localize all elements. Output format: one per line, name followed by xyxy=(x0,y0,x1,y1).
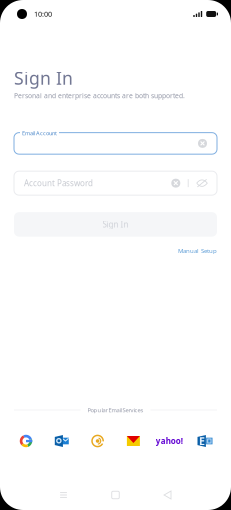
staticText: Sign In xyxy=(14,66,73,90)
staticText: 10:00 xyxy=(34,9,52,19)
button[interactable]: Google xyxy=(8,433,44,449)
button[interactable]: Clear password xyxy=(171,179,180,188)
button[interactable]: Other mail xyxy=(80,433,115,449)
button[interactable]: Clear email account xyxy=(198,139,217,148)
staticText: E xyxy=(199,434,205,448)
staticText: Personal and enterprise accounts are bot… xyxy=(14,91,185,100)
button[interactable]: Home xyxy=(89,482,141,508)
button[interactable]: Outlook xyxy=(44,433,80,449)
button[interactable]: Gmail xyxy=(115,433,151,449)
button[interactable]: Back xyxy=(141,482,193,508)
button[interactable]: Manual Setup xyxy=(178,247,217,255)
staticText: Account Password xyxy=(24,178,93,189)
button[interactable]: Yahoo Mail xyxy=(151,433,187,449)
button[interactable]: Show password xyxy=(196,179,217,188)
staticText: Email Account xyxy=(22,129,57,137)
staticText: Popular Email Services xyxy=(87,406,143,414)
staticText: Manual Setup xyxy=(178,247,217,255)
button[interactable]: Exchange xyxy=(187,433,223,449)
staticText: yahoo! xyxy=(156,436,183,446)
staticText: Sign In xyxy=(102,219,128,230)
button[interactable]: Recent apps xyxy=(37,482,89,508)
